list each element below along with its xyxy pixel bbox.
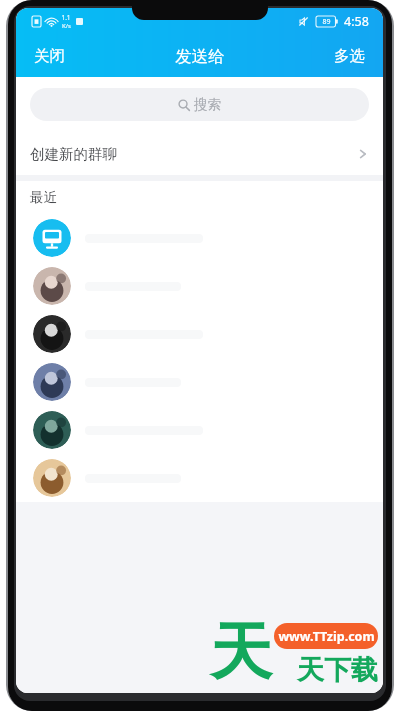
staticText: 发送给: [175, 46, 225, 67]
button[interactable]: 关闭: [16, 40, 75, 72]
staticText: 天: [210, 613, 272, 691]
button[interactable]: [16, 214, 383, 262]
staticText: 最近: [30, 189, 57, 206]
button[interactable]: 搜索: [30, 88, 369, 121]
staticText: 4:58: [344, 13, 369, 30]
staticText: K/s: [62, 22, 71, 30]
button[interactable]: [16, 262, 383, 310]
staticText: 多选: [334, 46, 365, 66]
button[interactable]: 多选: [324, 40, 383, 72]
button[interactable]: [16, 358, 383, 406]
staticText: 搜索: [194, 96, 221, 113]
button[interactable]: [16, 406, 383, 454]
staticText: 1.1: [61, 13, 71, 22]
button[interactable]: [16, 310, 383, 358]
staticText: 关闭: [34, 46, 65, 66]
button[interactable]: [16, 454, 383, 502]
staticText: 创建新的群聊: [30, 145, 117, 163]
button[interactable]: 创建新的群聊: [16, 132, 383, 175]
staticText: www.TTzip.com: [278, 628, 375, 645]
staticText: 天下载: [297, 653, 378, 687]
staticText: 89: [322, 17, 331, 27]
